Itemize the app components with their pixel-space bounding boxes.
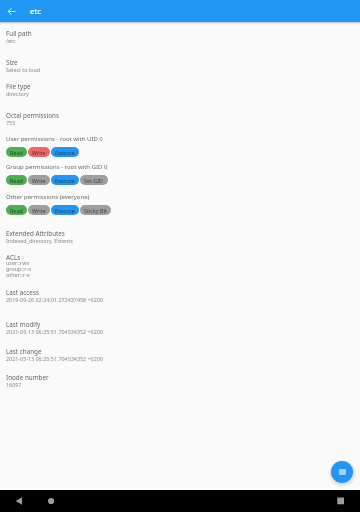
staticText: 755 [6,119,16,126]
button[interactable]: Navigate up [0,0,22,22]
staticText: Group permissions - root with GID 0 [6,163,108,171]
staticText: Other permissions (everyone) [6,193,90,201]
button[interactable]: Full path [0,29,360,45]
staticText: Select to load [6,66,40,73]
button[interactable]: Execute [51,175,79,185]
button[interactable]: Inode number [0,373,360,389]
staticText: Last change [6,347,42,356]
staticText: group::r-x [6,265,32,272]
button[interactable]: Read [6,175,27,185]
staticText: user::rwx [6,259,30,266]
button[interactable]: Set GID [80,175,108,185]
staticText: 2021-05-13 06:25:51.704534352 +0200 [6,355,103,362]
button[interactable]: Last change [0,347,360,363]
button[interactable]: Last access [0,288,360,304]
staticText: Extended Attributes [6,229,65,238]
button[interactable]: Execute [51,205,79,215]
button[interactable]: Write [28,205,50,215]
button[interactable]: Last modify [0,320,360,336]
staticText: File type [6,82,31,91]
staticText: etc [30,6,41,17]
button[interactable]: Execute [51,147,79,157]
button[interactable]: Save [331,461,353,483]
staticText: Last access [6,288,39,297]
staticText: Inode number [6,373,49,382]
staticText: User permissions - root with UID 0 [6,135,103,143]
staticText: Execute [55,177,75,184]
staticText: Write [32,207,46,214]
staticText: Read [10,207,23,214]
staticText: Full path [6,29,32,38]
staticText: Last modify [6,320,41,329]
button[interactable]: Extended Attributes [0,229,360,245]
button[interactable]: Write [28,175,50,185]
staticText: 16097 [6,381,22,388]
staticText: Octal permissions [6,111,59,120]
staticText: directory [6,90,29,97]
staticText: Read [10,149,23,156]
staticText: Size [6,58,18,67]
staticText: 2019-09-26 02:24:01.272437458 +0200 [6,296,103,303]
staticText: Write [32,177,46,184]
staticText: /etc [6,37,16,44]
button[interactable]: ACLs [0,253,360,278]
button[interactable]: Sticky Bit [80,205,111,215]
staticText: ACLs [6,253,21,262]
button[interactable]: Write [28,147,50,157]
button[interactable]: File type [0,82,360,98]
staticText: Indexed_directory, Extents [6,237,73,244]
button[interactable]: Size [0,58,360,74]
staticText: 2021-05-13 06:25:51.704534352 +0200 [6,328,103,335]
staticText: Sticky Bit [84,207,107,214]
staticText: Write [32,149,46,156]
staticText: other::r-x [6,271,30,278]
button[interactable]: Read [6,205,27,215]
staticText: Set GID [84,177,104,184]
staticText: Read [10,177,23,184]
button[interactable]: Octal permissions [0,111,360,127]
button[interactable]: Read [6,147,27,157]
staticText: Execute [55,149,75,156]
staticText: Execute [55,207,75,214]
